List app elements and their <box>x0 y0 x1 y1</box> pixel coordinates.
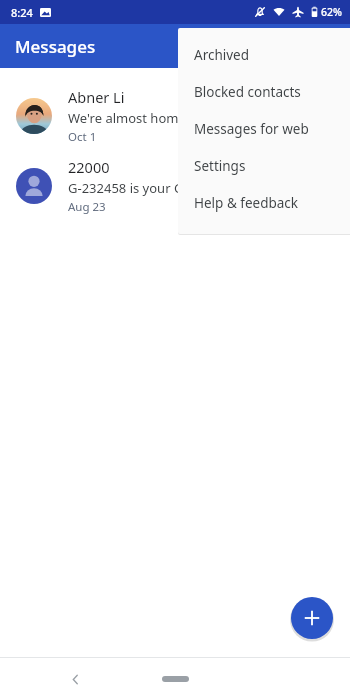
button[interactable]: Home <box>153 669 197 689</box>
staticText: 8:24 <box>11 5 33 20</box>
staticText: Abner Li <box>68 87 125 107</box>
staticText: Aug 23 <box>68 199 106 215</box>
button[interactable]: 22000 <box>0 151 350 221</box>
button[interactable]: Back <box>58 662 92 696</box>
staticText: We're almost home <box>68 109 186 127</box>
staticText: Archived <box>194 46 250 64</box>
staticText: G-232458 is your Google verification cod… <box>68 179 326 197</box>
staticText: Blocked contacts <box>194 83 301 101</box>
staticText: Settings <box>194 157 246 175</box>
staticText: Oct 1 <box>68 129 97 145</box>
button[interactable]: Archived <box>178 36 350 73</box>
button[interactable]: More options <box>306 24 350 68</box>
staticText: Messages for web <box>194 120 309 138</box>
button[interactable]: Settings <box>178 147 350 184</box>
staticText: 62% <box>321 5 342 19</box>
button[interactable]: Blocked contacts <box>178 73 350 110</box>
staticText: Messages <box>15 35 96 58</box>
staticText: Help & feedback <box>194 194 299 212</box>
button[interactable]: Help & feedback <box>178 184 350 221</box>
button[interactable]: Start chat <box>290 596 334 640</box>
button[interactable]: Abner Li <box>0 81 350 151</box>
staticText: 22000 <box>68 157 110 177</box>
button[interactable]: Messages for web <box>178 110 350 147</box>
